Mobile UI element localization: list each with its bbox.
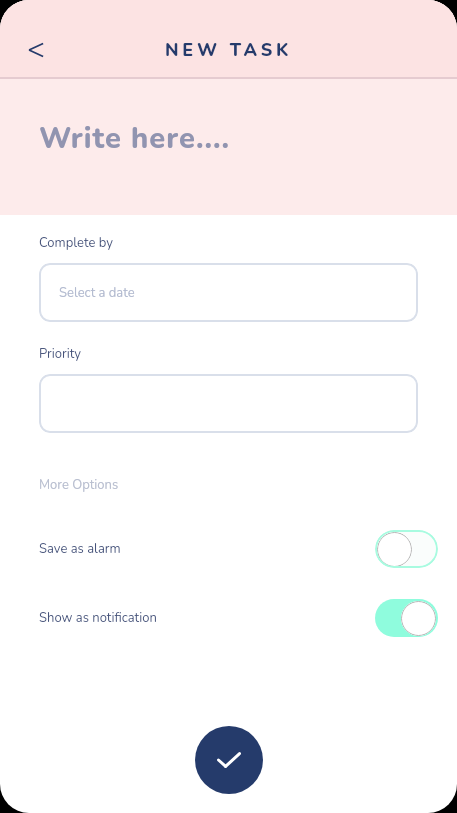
button[interactable]: Save as alarm: [0, 530, 457, 568]
button[interactable]: Save task: [195, 726, 263, 794]
staticText: Save as alarm: [39, 540, 121, 558]
button[interactable]: Select a date: [39, 263, 418, 322]
staticText: Write here....: [39, 119, 231, 159]
staticText: Complete by: [39, 234, 113, 252]
staticText: Show as notification: [39, 609, 157, 627]
staticText: More Options: [39, 476, 119, 494]
staticText: NEW TASK: [165, 38, 293, 63]
button[interactable]: Show as notification: [0, 599, 457, 637]
staticText: Priority: [39, 345, 81, 363]
button[interactable]: Back: [11, 28, 55, 72]
staticText: Select a date: [59, 284, 135, 302]
button[interactable]: [39, 374, 418, 433]
